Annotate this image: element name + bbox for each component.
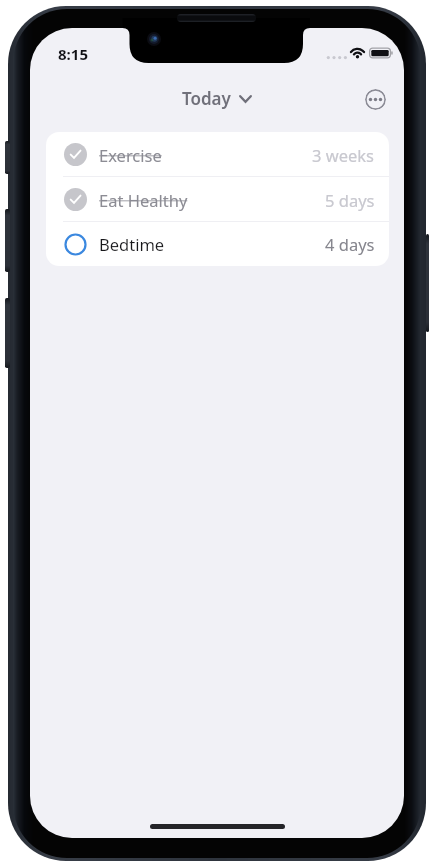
staticText: 4 days <box>325 233 375 255</box>
button[interactable]: More options <box>365 89 386 110</box>
staticText: Today <box>182 87 231 110</box>
staticText: 5 days <box>325 189 375 211</box>
staticText: Bedtime <box>99 233 165 255</box>
staticText: 8:15 <box>58 44 88 64</box>
button[interactable]: Exercise <box>46 132 389 177</box>
button[interactable]: Eat Healthy <box>46 177 389 222</box>
staticText: Exercise <box>99 144 162 166</box>
button[interactable]: Today <box>178 84 256 113</box>
staticText: Eat Healthy <box>99 189 188 211</box>
button[interactable]: Bedtime <box>46 222 389 266</box>
staticText: 3 weeks <box>312 144 375 166</box>
